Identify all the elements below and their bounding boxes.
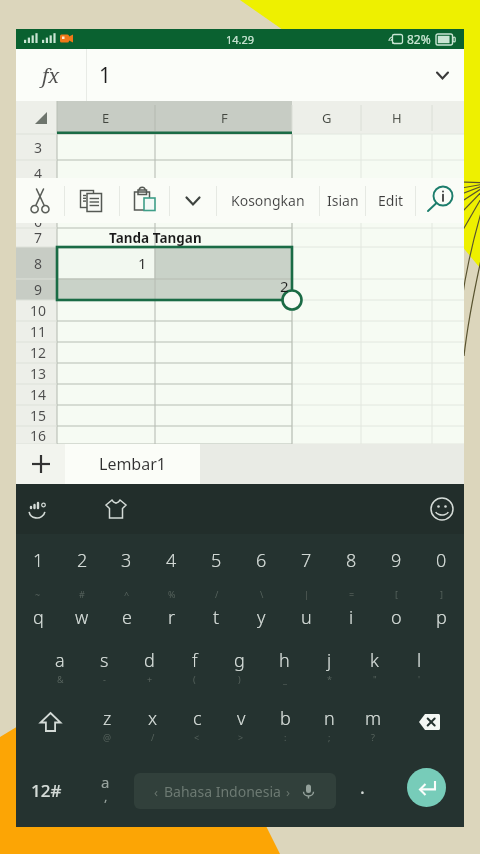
staticText: Tanda Tangan [109,229,202,247]
button[interactable]: Search [416,178,464,223]
button[interactable]: 7 [284,534,329,586]
button[interactable]: Enter [389,754,464,827]
staticText: > [238,731,244,743]
staticText: 15 [30,406,47,425]
staticText: F [221,109,228,127]
button[interactable]: 7 [16,228,57,247]
button[interactable]: h [262,638,307,696]
button[interactable]: 16 [16,426,57,444]
staticText: 7 [301,548,312,573]
button[interactable]: 0 [419,534,464,586]
button[interactable]: 12# [16,754,76,827]
button[interactable]: E [90,107,122,128]
button[interactable]: ‹ [134,773,336,809]
staticText: p [436,605,447,630]
button[interactable]: 3 [16,134,57,160]
button[interactable]: k [352,638,397,696]
button[interactable]: Expand formula bar [420,49,464,101]
staticText: @ [103,731,112,743]
button[interactable]: 10 [16,300,57,321]
button[interactable]: a [38,638,82,696]
button[interactable]: Handwriting [23,494,53,524]
button[interactable]: 8 [16,247,57,279]
staticText: k [370,648,379,673]
button[interactable]: s [82,638,127,696]
button[interactable]: m [351,696,395,754]
button[interactable]: Paste [120,178,169,223]
button[interactable]: g [217,638,262,696]
button[interactable]: z [85,696,130,754]
staticText: r [168,605,176,630]
button[interactable]: 9 [16,279,57,300]
button[interactable]: Lembar1 [65,444,200,484]
staticText: 1 [33,548,44,573]
button[interactable]: b [263,696,307,754]
button[interactable]: Cut [16,178,64,223]
button[interactable]: n [307,696,351,754]
staticText: 12# [31,779,62,802]
button[interactable]: 6 [16,212,57,228]
button[interactable]: ^ [104,586,149,638]
button[interactable]: | [284,586,329,638]
staticText: h [279,648,290,673]
button[interactable]: l [397,638,442,696]
button[interactable]: v [219,696,263,754]
button[interactable]: 14 [16,384,57,405]
button[interactable]: 11 [16,321,57,342]
staticText: l [417,648,422,673]
button[interactable]: j [307,638,352,696]
button[interactable]: . [336,754,389,827]
staticText: f [192,648,198,673]
button[interactable]: 8 [329,534,374,586]
button[interactable]: 9 [374,534,419,586]
staticText: 6 [256,548,267,573]
button[interactable]: 5 [194,534,239,586]
button[interactable]: More [170,178,216,223]
button[interactable]: 15 [16,405,57,426]
button[interactable]: [ [374,586,419,638]
staticText: \ [260,588,264,600]
button[interactable]: Kosongkan [217,178,319,223]
staticText: [ [395,588,398,600]
button[interactable]: \ [239,586,284,638]
button[interactable]: Change language [76,754,134,827]
button[interactable]: # [60,586,104,638]
button[interactable]: f [172,638,217,696]
button[interactable]: Emoji [427,494,457,524]
button[interactable]: 4 [16,160,57,186]
staticText: : [284,731,287,743]
button[interactable]: 2 [60,534,104,586]
button[interactable]: ] [419,586,464,638]
button[interactable]: 5 [16,186,57,212]
staticText: 16 [30,426,47,444]
button[interactable]: / [194,586,239,638]
button[interactable]: Edit [366,178,415,223]
button[interactable]: c [175,696,219,754]
staticText: Kosongkan [231,191,305,210]
button[interactable]: Isian [320,178,365,223]
button[interactable]: Backspace [395,696,464,754]
button[interactable]: H [381,107,413,128]
button[interactable]: Add sheet [16,444,65,484]
button[interactable]: Function [16,49,86,101]
staticText: c [193,706,202,731]
button[interactable]: x [130,696,175,754]
button[interactable]: F [208,107,240,128]
button[interactable]: 6 [239,534,284,586]
button[interactable]: Theme [101,494,131,524]
button[interactable]: G [311,107,343,128]
button[interactable]: Copy [65,178,119,223]
button[interactable]: d [127,638,172,696]
staticText: ] [440,588,443,600]
button[interactable]: Shift [16,696,85,754]
button[interactable]: ~ [16,586,60,638]
button[interactable]: = [329,586,374,638]
button[interactable]: 1 [16,534,60,586]
button[interactable]: 13 [16,363,57,384]
button[interactable]: 4 [149,534,194,586]
button[interactable]: 12 [16,342,57,363]
button[interactable]: 3 [104,534,149,586]
staticText: / [215,588,219,600]
staticText: ; [328,731,331,743]
button[interactable]: % [149,586,194,638]
